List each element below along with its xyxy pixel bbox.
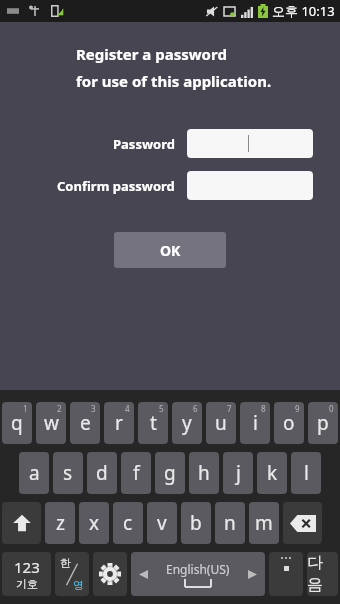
staticText: e (80, 410, 91, 436)
staticText: for use of this application. (76, 71, 272, 91)
staticText: v (157, 510, 167, 536)
button[interactable]: t (138, 402, 168, 444)
button[interactable]: j (223, 452, 253, 494)
button[interactable] (187, 129, 313, 158)
staticText: 8 (261, 403, 266, 414)
staticText: 오후 10:13 (272, 2, 335, 20)
staticText: 1 (23, 403, 28, 414)
staticText: 6 (193, 403, 198, 414)
staticText: i (253, 410, 258, 436)
staticText: 0 (329, 403, 334, 414)
staticText: 4 (125, 403, 130, 414)
staticText: Password (113, 135, 175, 153)
button[interactable]: k (257, 452, 287, 494)
button[interactable]: r (104, 402, 134, 444)
button[interactable]: Space (131, 552, 265, 596)
button[interactable]: OK (114, 232, 226, 268)
button[interactable]: p (308, 402, 338, 444)
staticText: q (11, 410, 23, 436)
staticText: t (150, 410, 157, 436)
button[interactable]: b (181, 502, 211, 544)
staticText: 7 (227, 403, 232, 414)
staticText: p (317, 410, 329, 436)
staticText: b (190, 510, 202, 536)
staticText: m (255, 510, 273, 536)
button[interactable]: n (215, 502, 245, 544)
staticText: English(US) (166, 561, 230, 577)
staticText: k (267, 460, 278, 486)
staticText: 9 (295, 403, 300, 414)
button[interactable]: v (147, 502, 177, 544)
button[interactable]: g (155, 452, 185, 494)
staticText: a (29, 460, 40, 486)
staticText: Register a password (76, 44, 227, 64)
button[interactable]: q (2, 402, 32, 444)
staticText: l (304, 460, 309, 486)
button[interactable]: z (45, 502, 75, 544)
staticText: 기호 (16, 577, 38, 591)
staticText: 한 (60, 556, 71, 570)
staticText: 5 (159, 403, 164, 414)
button[interactable]: m (249, 502, 279, 544)
staticText: x (89, 510, 100, 536)
staticText: OK (160, 241, 181, 260)
button[interactable]: Period (269, 552, 303, 596)
staticText: y (182, 410, 192, 436)
button[interactable]: Shift (2, 502, 41, 544)
staticText: 영 (73, 578, 84, 592)
staticText: z (56, 510, 65, 536)
button[interactable]: c (113, 502, 143, 544)
staticText: u (215, 410, 227, 436)
staticText: 123 (14, 557, 40, 577)
staticText: n (224, 510, 236, 536)
button[interactable]: s (53, 452, 83, 494)
button[interactable]: d (87, 452, 117, 494)
staticText: s (63, 460, 73, 486)
staticText: 3 (91, 403, 96, 414)
staticText: 다음 (307, 553, 338, 595)
button[interactable]: l (291, 452, 321, 494)
staticText: f (133, 460, 140, 486)
button[interactable]: Backspace (283, 502, 322, 544)
button[interactable]: w (36, 402, 66, 444)
button[interactable]: i (240, 402, 270, 444)
staticText: g (164, 460, 176, 486)
button[interactable]: Korean English toggle (55, 552, 89, 596)
button[interactable]: Symbols (2, 552, 51, 596)
staticText: c (123, 510, 133, 536)
staticText: o (283, 410, 295, 436)
staticText: d (96, 460, 108, 486)
staticText: w (44, 410, 59, 436)
button[interactable]: u (206, 402, 236, 444)
staticText: r (115, 410, 123, 436)
button[interactable] (187, 171, 313, 200)
button[interactable]: a (19, 452, 49, 494)
staticText: 2 (57, 403, 62, 414)
button[interactable]: y (172, 402, 202, 444)
button[interactable]: f (121, 452, 151, 494)
staticText: h (198, 460, 210, 486)
staticText: j (236, 460, 241, 486)
button[interactable]: o (274, 402, 304, 444)
button[interactable]: Next (307, 552, 338, 596)
staticText: Confirm password (57, 177, 175, 195)
button[interactable]: x (79, 502, 109, 544)
button[interactable]: e (70, 402, 100, 444)
button[interactable]: Settings (93, 552, 127, 596)
button[interactable]: h (189, 452, 219, 494)
